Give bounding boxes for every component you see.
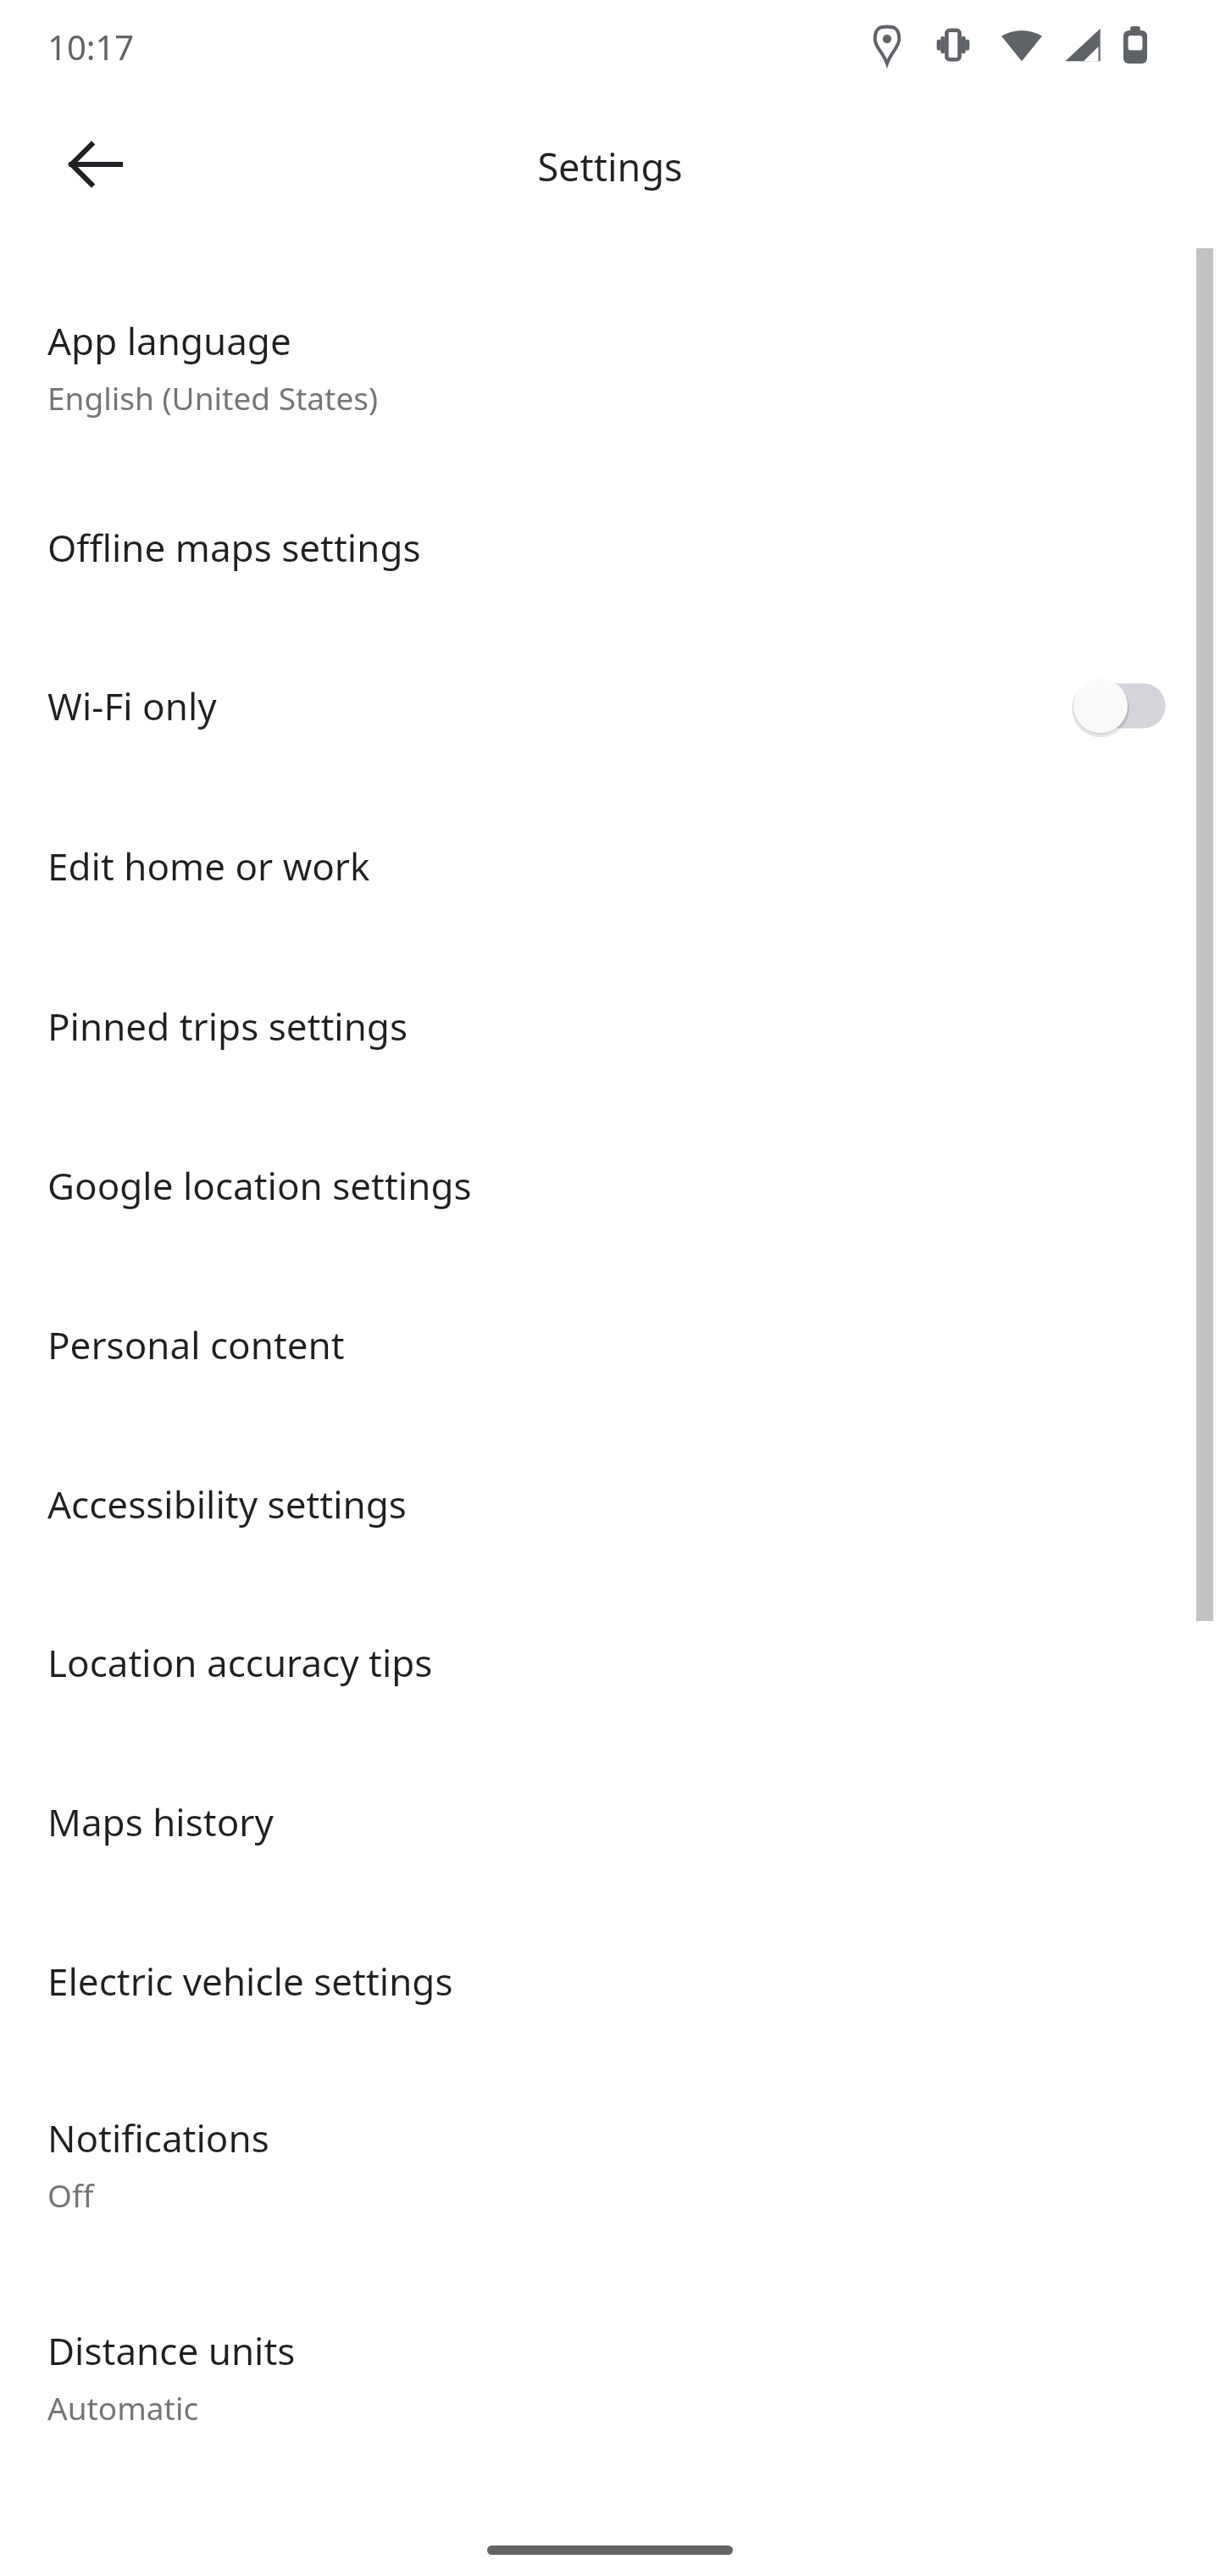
staticText: Wi-Fi only: [47, 680, 1073, 731]
staticText: Automatic: [47, 2386, 199, 2429]
staticText: Personal content: [47, 1319, 1173, 1370]
staticText: Electric vehicle settings: [47, 1956, 1173, 2007]
staticText: Maps history: [47, 1796, 1173, 1847]
button[interactable]: Wi-Fi only toggle: [1073, 672, 1173, 740]
button[interactable]: Distance units: [0, 2296, 1220, 2456]
button[interactable]: Pinned trips settings: [0, 947, 1220, 1106]
button[interactable]: Maps history: [0, 1742, 1220, 1901]
staticText: Accessibility settings: [47, 1479, 1173, 1529]
staticText: Notifications: [47, 2112, 269, 2163]
button[interactable]: Edit home or work: [0, 786, 1220, 946]
button[interactable]: Back: [42, 112, 150, 217]
staticText: 10:17: [47, 24, 135, 69]
staticText: Edit home or work: [47, 841, 1173, 891]
button[interactable]: Location accuracy tips: [0, 1583, 1220, 1742]
button[interactable]: Personal content: [0, 1265, 1220, 1424]
staticText: Offline maps settings: [47, 522, 1173, 573]
staticText: Location accuracy tips: [47, 1637, 1173, 1688]
staticText: Google location settings: [47, 1160, 1173, 1211]
button[interactable]: Electric vehicle settings: [0, 1901, 1220, 2061]
staticText: English (United States): [47, 376, 379, 419]
button[interactable]: Accessibility settings: [0, 1424, 1220, 1584]
button[interactable]: App language: [0, 286, 1220, 446]
button[interactable]: Notifications: [0, 2084, 1220, 2243]
button[interactable]: Google location settings: [0, 1106, 1220, 1265]
staticText: App language: [47, 315, 291, 366]
button[interactable]: Offline maps settings: [0, 468, 1220, 627]
staticText: Distance units: [47, 2325, 296, 2376]
button[interactable]: Wi-Fi only: [0, 626, 1220, 786]
staticText: Pinned trips settings: [47, 1001, 1173, 1052]
staticText: Off: [47, 2173, 94, 2216]
staticText: Settings: [0, 141, 1220, 192]
